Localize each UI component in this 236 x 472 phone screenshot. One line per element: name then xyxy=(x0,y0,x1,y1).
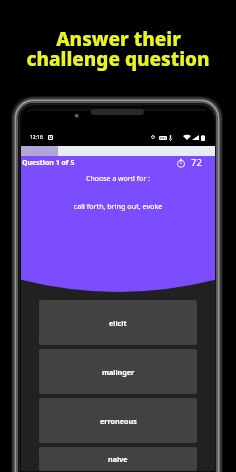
staticText: Question 1 of 5 xyxy=(22,158,75,168)
staticText: Answer their xyxy=(56,26,181,52)
staticText: elicit xyxy=(109,318,127,328)
button[interactable]: malinger xyxy=(39,349,197,394)
staticText: challenge question xyxy=(26,46,210,72)
button[interactable]: naive xyxy=(39,447,197,471)
staticText: Choose a word for : xyxy=(21,174,215,184)
staticText: call forth, bring out, evoke xyxy=(21,201,215,211)
button[interactable]: elicit xyxy=(39,300,197,345)
staticText: malinger xyxy=(102,367,135,377)
staticText: naive xyxy=(108,454,128,464)
button[interactable]: erroneous xyxy=(39,398,197,443)
staticText: 72 xyxy=(191,156,202,169)
staticText: 12:16 xyxy=(30,134,43,141)
staticText: erroneous xyxy=(100,416,137,426)
